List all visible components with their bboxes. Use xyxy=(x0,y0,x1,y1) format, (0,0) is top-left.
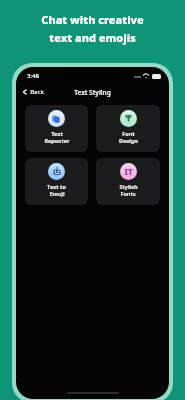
button[interactable]: Stylish Fonts xyxy=(96,158,160,205)
other: Text to Emoji xyxy=(52,167,62,177)
staticText: Text Styling xyxy=(74,88,111,97)
other: Text Repeater xyxy=(52,114,61,123)
other: Stylish Fonts xyxy=(124,166,133,177)
staticText: Text xyxy=(51,130,63,137)
button[interactable]: Font Design xyxy=(96,105,160,152)
other: Font Design xyxy=(124,114,133,123)
staticText: Font xyxy=(122,130,135,137)
staticText: Back xyxy=(30,88,44,96)
button[interactable]: Text Repeater xyxy=(25,105,88,152)
staticText: text and emojis xyxy=(49,30,136,45)
staticText: Fonts xyxy=(120,190,136,197)
button[interactable]: Back xyxy=(16,86,50,98)
staticText: Repeater xyxy=(44,137,70,144)
staticText: 3:48 xyxy=(27,72,39,80)
staticText: Design xyxy=(119,137,138,144)
button[interactable]: Text to Emoji xyxy=(25,158,88,205)
staticText: Stylish xyxy=(119,183,138,190)
staticText: Emoji xyxy=(49,190,65,197)
staticText: IT xyxy=(124,166,133,177)
staticText: Text to xyxy=(47,183,66,190)
staticText: Chat with creative xyxy=(41,12,144,27)
